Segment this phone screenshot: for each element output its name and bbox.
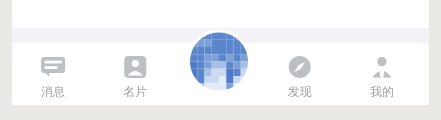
staticText: 消息 bbox=[41, 84, 65, 99]
button[interactable]: 发现 bbox=[259, 43, 341, 105]
button[interactable]: 我的 bbox=[341, 43, 423, 105]
button[interactable]: 消息 bbox=[12, 43, 94, 105]
button[interactable]: Create bbox=[187, 29, 251, 93]
staticText: 名片 bbox=[123, 84, 147, 99]
staticText: 我的 bbox=[370, 84, 394, 99]
button[interactable]: 名片 bbox=[94, 43, 176, 105]
staticText: 发现 bbox=[288, 84, 312, 99]
